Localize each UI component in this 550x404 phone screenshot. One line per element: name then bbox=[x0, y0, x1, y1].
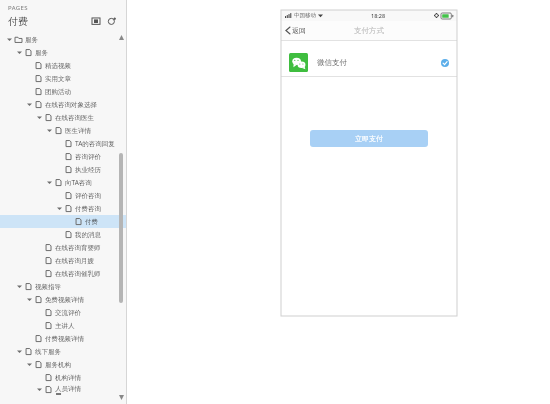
staticText: 在线咨询医生 bbox=[55, 114, 94, 122]
button[interactable]: 在线咨询对象选择 bbox=[0, 98, 126, 111]
staticText: 18:28 bbox=[371, 12, 386, 19]
staticText: 交流评价 bbox=[55, 309, 81, 317]
button[interactable]: 机构详情 bbox=[0, 371, 126, 384]
button[interactable]: 实用文章 bbox=[0, 72, 126, 85]
button[interactable]: Selected bbox=[441, 59, 449, 67]
button[interactable]: 我的消息 bbox=[0, 228, 126, 241]
button[interactable]: 服务 bbox=[0, 33, 126, 46]
button[interactable]: Add page bbox=[106, 15, 118, 27]
staticText: 付费 bbox=[8, 15, 28, 28]
button[interactable]: 返回 bbox=[286, 26, 306, 35]
staticText: 团购活动 bbox=[45, 88, 71, 96]
staticText: 向TA咨询 bbox=[65, 178, 92, 187]
staticText: 精选视频 bbox=[45, 62, 71, 70]
staticText: 微信支付 bbox=[317, 58, 347, 67]
button[interactable]: 付费 bbox=[0, 215, 126, 228]
staticText: 机构详情 bbox=[55, 374, 81, 382]
button[interactable]: 咨询评价 bbox=[0, 150, 126, 163]
button[interactable]: 主讲人 bbox=[0, 319, 126, 332]
staticText: 主讲人 bbox=[55, 322, 75, 330]
button[interactable]: 执业经历 bbox=[0, 163, 126, 176]
staticText: 支付方式 bbox=[354, 26, 384, 35]
staticText: 咨询评价 bbox=[75, 153, 101, 161]
staticText: TA的咨询回复 bbox=[75, 139, 115, 148]
button[interactable]: 精选视频 bbox=[0, 59, 126, 72]
staticText: 付费 bbox=[85, 218, 98, 226]
button[interactable]: 评价咨询 bbox=[0, 189, 126, 202]
button[interactable]: Export bbox=[90, 15, 102, 27]
staticText: 实用文章 bbox=[45, 75, 71, 83]
staticText: 免费视频详情 bbox=[45, 296, 84, 304]
button[interactable]: TA的咨询回复 bbox=[0, 137, 126, 150]
button[interactable]: 在线咨询育婴师 bbox=[0, 241, 126, 254]
button[interactable]: 在线咨询月嫂 bbox=[0, 254, 126, 267]
staticText: 在线咨询月嫂 bbox=[55, 257, 94, 265]
staticText: 在线咨询育婴师 bbox=[55, 244, 101, 252]
staticText: 服务机构 bbox=[45, 361, 71, 369]
staticText: 医生详情 bbox=[65, 127, 91, 135]
button[interactable]: 向TA咨询 bbox=[0, 176, 126, 189]
staticText: 执业经历 bbox=[75, 166, 101, 174]
button[interactable]: 视频指导 bbox=[0, 280, 126, 293]
staticText: 线下服务 bbox=[35, 348, 61, 356]
staticText: 人员详情 bbox=[55, 385, 81, 393]
button[interactable]: 医生详情 bbox=[0, 124, 126, 137]
staticText: 服务 bbox=[35, 49, 48, 57]
staticText: 评价咨询 bbox=[75, 192, 101, 200]
button[interactable]: 线下服务 bbox=[0, 345, 126, 358]
staticText: 在线咨询对象选择 bbox=[45, 101, 97, 109]
staticText: 付费咨询 bbox=[75, 205, 101, 213]
button[interactable]: 交流评价 bbox=[0, 306, 126, 319]
button[interactable]: 微信支付 bbox=[281, 49, 457, 76]
staticText: 付费视频详情 bbox=[45, 335, 84, 343]
staticText: 视频指导 bbox=[35, 283, 61, 291]
button[interactable]: 在线咨询催乳师 bbox=[0, 267, 126, 280]
staticText: 中国移动 bbox=[294, 12, 316, 19]
staticText: 返回 bbox=[292, 26, 306, 35]
button[interactable]: 人员详情 bbox=[0, 384, 126, 394]
staticText: 我的消息 bbox=[75, 231, 101, 239]
button[interactable]: 免费视频详情 bbox=[0, 293, 126, 306]
button[interactable]: 在线咨询医生 bbox=[0, 111, 126, 124]
staticText: 在线咨询催乳师 bbox=[55, 270, 101, 278]
staticText: PAGES bbox=[8, 4, 29, 12]
button[interactable]: 服务机构 bbox=[0, 358, 126, 371]
button[interactable]: 付费咨询 bbox=[0, 202, 126, 215]
button[interactable]: 付费视频详情 bbox=[0, 332, 126, 345]
staticText: 立即支付 bbox=[355, 134, 383, 143]
button[interactable]: 团购活动 bbox=[0, 85, 126, 98]
button[interactable]: 服务 bbox=[0, 46, 126, 59]
button[interactable]: 立即支付 bbox=[310, 130, 428, 147]
staticText: 服务 bbox=[25, 36, 38, 44]
